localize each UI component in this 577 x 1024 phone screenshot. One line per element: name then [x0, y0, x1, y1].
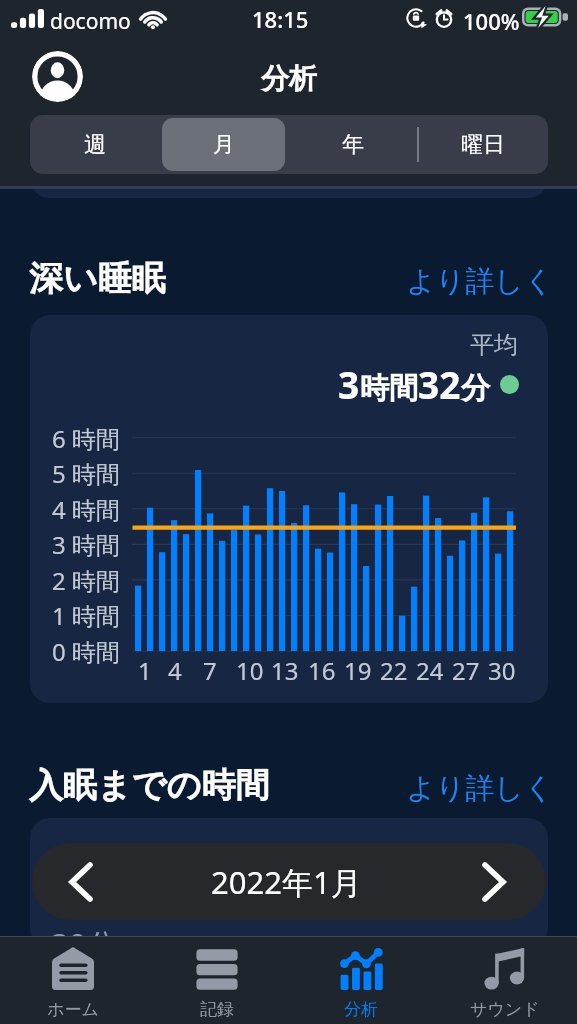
staticText: 1 時間 — [52, 599, 120, 632]
staticText: より詳しく — [406, 770, 554, 807]
staticText: 記録 — [200, 999, 234, 1020]
staticText: 30 — [488, 654, 516, 687]
button[interactable]: 曜日 — [421, 118, 545, 171]
button[interactable]: ホーム — [0, 937, 145, 1024]
staticText: 年 — [342, 131, 364, 159]
staticText: 13 — [271, 654, 299, 687]
button[interactable]: Profile — [32, 51, 83, 102]
button[interactable]: Next month — [442, 843, 546, 920]
staticText: 分析 — [261, 61, 317, 96]
staticText: 27 — [452, 654, 480, 687]
staticText: 4 時間 — [52, 493, 120, 526]
staticText: 分析 — [344, 999, 378, 1020]
staticText: 月 — [213, 131, 235, 159]
staticText: 深い睡眠 — [29, 257, 166, 300]
staticText: 入眠までの時間 — [29, 764, 270, 807]
button[interactable]: 月 — [162, 118, 285, 171]
button[interactable]: 記録 — [145, 937, 289, 1024]
staticText: 24 — [416, 654, 444, 687]
staticText: 2 時間 — [52, 564, 120, 597]
staticText: 1 — [138, 654, 152, 687]
staticText: 時間 — [360, 370, 418, 407]
staticText: より詳しく — [406, 263, 554, 300]
staticText: 100% — [463, 6, 520, 36]
staticText: 10 — [236, 654, 264, 687]
button[interactable]: 年 — [291, 118, 415, 171]
button[interactable]: サウンド — [433, 937, 577, 1024]
staticText: 32 — [418, 359, 461, 409]
button[interactable]: 分析 — [289, 937, 433, 1024]
staticText: 7 — [203, 654, 217, 687]
staticText: 22 — [380, 654, 408, 687]
staticText: 4 — [168, 654, 182, 687]
staticText: 曜日 — [461, 131, 505, 159]
staticText: 3 時間 — [52, 528, 120, 561]
staticText: 2022年1月 — [211, 861, 362, 903]
staticText: 18:15 — [252, 4, 309, 34]
staticText: 16 — [308, 654, 336, 687]
staticText: ホーム — [47, 999, 99, 1020]
staticText: 5 時間 — [52, 457, 120, 490]
staticText: 6 時間 — [52, 422, 120, 455]
staticText: 30分 — [51, 923, 118, 948]
button[interactable]: より詳しく — [406, 770, 554, 807]
staticText: 分 — [461, 370, 490, 407]
staticText: 平均 — [470, 330, 518, 360]
staticText: 3 — [338, 359, 360, 409]
button[interactable]: より詳しく — [406, 263, 554, 300]
staticText: docomo — [50, 7, 131, 36]
staticText: 週 — [84, 131, 106, 159]
staticText: 19 — [344, 654, 372, 687]
staticText: サウンド — [470, 999, 540, 1020]
staticText: 0 時間 — [52, 635, 120, 668]
button[interactable]: 週 — [33, 118, 156, 171]
button[interactable]: Previous month — [32, 843, 130, 920]
